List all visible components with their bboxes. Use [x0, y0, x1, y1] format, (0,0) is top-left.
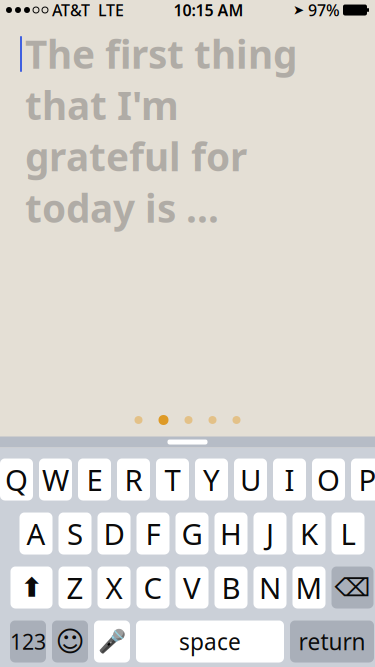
button[interactable]: K [292, 512, 325, 554]
staticText: O [317, 460, 340, 499]
button[interactable]: space [136, 620, 284, 662]
button[interactable]: R [117, 458, 150, 500]
staticText: U [240, 460, 261, 499]
button[interactable]: T [156, 458, 189, 500]
button[interactable]: V [175, 566, 208, 608]
staticText: K [300, 514, 318, 553]
staticText: R [124, 460, 142, 499]
staticText: G [181, 514, 202, 553]
button[interactable]: X [97, 566, 130, 608]
staticText: return [298, 626, 365, 656]
button[interactable]: 123 [10, 620, 46, 662]
staticText: Q [5, 460, 28, 499]
button[interactable]: L [331, 512, 364, 554]
button[interactable]: W [39, 458, 72, 500]
staticText: space [179, 626, 241, 656]
staticText: H [220, 514, 242, 553]
staticText: The first thing that I'm grateful for to… [25, 28, 297, 233]
button[interactable]: Z [58, 566, 91, 608]
button[interactable]: return [290, 620, 374, 662]
button[interactable]: C [136, 566, 169, 608]
staticText: Z [66, 568, 83, 607]
staticText: J [266, 514, 274, 553]
staticText: D [103, 514, 124, 553]
staticText: Y [203, 460, 220, 499]
button[interactable]: I [273, 458, 306, 500]
staticText: 123 [10, 627, 46, 656]
button[interactable]: Delete [331, 566, 373, 608]
button[interactable]: H [214, 512, 247, 554]
staticText: ☺ [55, 626, 84, 657]
staticText: C [143, 568, 162, 607]
button[interactable]: D [97, 512, 130, 554]
button[interactable]: S [58, 512, 91, 554]
staticText: I [284, 460, 294, 499]
button[interactable]: N [253, 566, 286, 608]
staticText: V [183, 568, 201, 607]
button[interactable]: G [175, 512, 208, 554]
button[interactable]: U [234, 458, 267, 500]
staticText: S [67, 514, 83, 553]
button[interactable]: E [78, 458, 111, 500]
staticText: 97% [304, 0, 340, 21]
staticText: A [26, 514, 45, 553]
staticText: 10:15 AM [173, 0, 243, 21]
staticText: E [86, 460, 102, 499]
button[interactable]: P [351, 458, 375, 500]
button[interactable]: O [312, 458, 345, 500]
staticText: N [259, 568, 281, 607]
staticText: P [358, 460, 375, 499]
button[interactable]: J [253, 512, 286, 554]
staticText: L [340, 514, 355, 553]
staticText: ⬆ [20, 572, 42, 603]
button[interactable]: A [19, 512, 52, 554]
staticText: X [105, 568, 122, 607]
button[interactable]: Emoji [52, 620, 88, 662]
staticText: M [295, 568, 322, 607]
staticText: T [164, 460, 180, 499]
button[interactable]: B [214, 566, 247, 608]
staticText: ➤ [293, 2, 304, 17]
button[interactable]: M [292, 566, 325, 608]
staticText: ⌫ [334, 573, 370, 602]
button[interactable]: F [136, 512, 169, 554]
button[interactable]: Shift [10, 566, 52, 608]
button[interactable]: Y [195, 458, 228, 500]
staticText: B [221, 568, 240, 607]
staticText: F [145, 514, 160, 553]
button[interactable]: Dictation [94, 620, 130, 662]
staticText: LTE [90, 0, 124, 21]
staticText: W [42, 460, 69, 499]
staticText: AT&T [48, 0, 90, 21]
button[interactable]: Q [0, 458, 33, 500]
staticText: 🎤 [98, 629, 126, 654]
